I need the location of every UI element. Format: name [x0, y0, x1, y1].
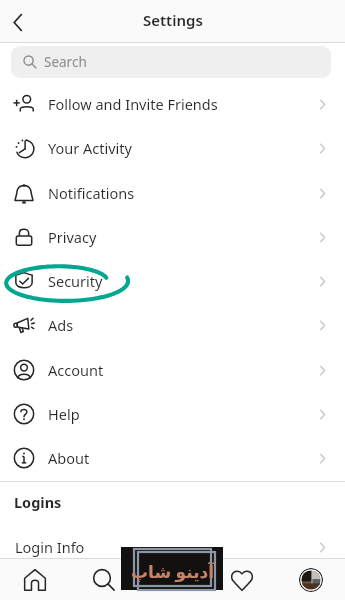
staticText: Notifications: [48, 183, 135, 203]
button[interactable]: Account: [0, 348, 345, 392]
button[interactable]: Profile: [299, 568, 323, 592]
staticText: Privacy: [48, 227, 97, 247]
button[interactable]: Notifications: [0, 171, 345, 215]
button[interactable]: Reels: [154, 561, 192, 599]
button[interactable]: Home: [16, 561, 54, 599]
button[interactable]: Search: [11, 46, 331, 78]
staticText: آدینو شاپ: [131, 560, 215, 583]
staticText: Follow and Invite Friends: [48, 94, 218, 114]
staticText: Settings: [143, 10, 203, 30]
button[interactable]: Security: [0, 259, 345, 303]
button[interactable]: Follow and Invite Friends: [0, 82, 345, 126]
button[interactable]: Search: [85, 561, 123, 599]
staticText: Help: [48, 404, 80, 424]
staticText: Login Info: [15, 537, 85, 557]
button[interactable]: Help: [0, 392, 345, 436]
staticText: Your Activity: [48, 138, 132, 158]
button[interactable]: Your Activity: [0, 126, 345, 170]
button[interactable]: Activity: [223, 561, 261, 599]
staticText: About: [48, 448, 90, 468]
button[interactable]: About: [0, 436, 345, 480]
button[interactable]: Login Info: [0, 526, 345, 568]
staticText: Security: [48, 271, 103, 291]
button[interactable]: Back: [0, 1, 36, 43]
staticText: Search: [44, 53, 87, 71]
button[interactable]: Privacy: [0, 215, 345, 259]
staticText: Account: [48, 360, 104, 380]
staticText: Logins: [14, 492, 62, 512]
button[interactable]: Ads: [0, 303, 345, 347]
staticText: Ads: [48, 315, 74, 335]
